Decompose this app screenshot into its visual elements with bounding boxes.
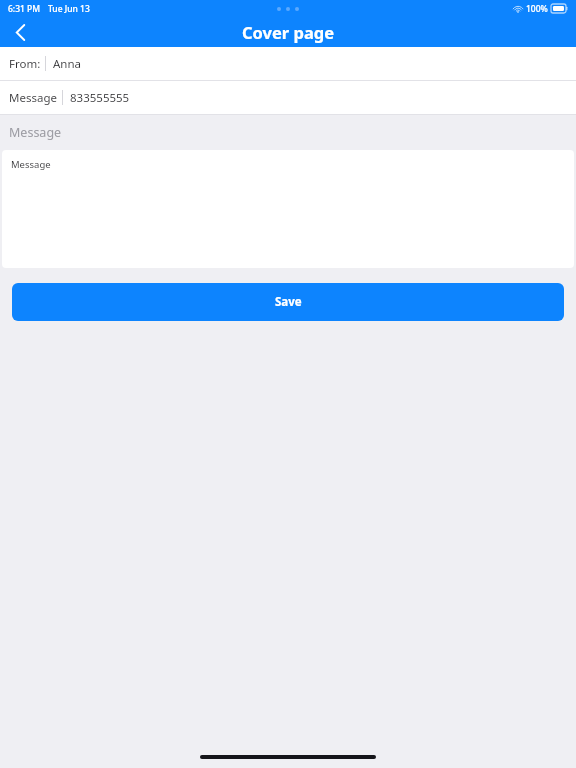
staticText: Cover page xyxy=(242,21,335,43)
staticText: Message xyxy=(9,124,62,141)
staticText: From: xyxy=(9,56,41,72)
staticText: Save xyxy=(275,294,302,310)
button[interactable]: From: xyxy=(0,47,576,80)
staticText: Tue Jun 13 xyxy=(48,3,90,15)
staticText: Message xyxy=(9,90,57,106)
staticText: Anna xyxy=(53,56,82,72)
button[interactable]: Message xyxy=(0,81,576,114)
staticText: Message xyxy=(11,158,51,171)
staticText: 833555555 xyxy=(70,90,130,106)
button[interactable]: Save xyxy=(12,283,564,321)
staticText: 6:31 PM xyxy=(8,3,41,15)
button[interactable]: Message xyxy=(2,150,574,268)
staticText: 100% xyxy=(526,3,548,15)
button[interactable]: Back xyxy=(0,17,40,47)
